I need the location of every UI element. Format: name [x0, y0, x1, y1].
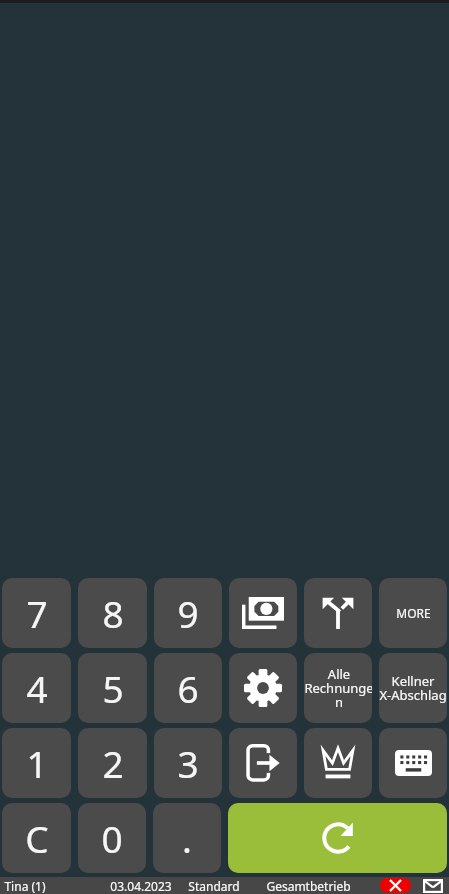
button[interactable]: Alle Rechnunge n — [304, 653, 372, 723]
staticText: 5 — [102, 663, 124, 713]
button[interactable] — [380, 878, 411, 893]
button[interactable]: 4 — [2, 653, 71, 723]
staticText: Standard — [188, 878, 240, 894]
button[interactable] — [304, 578, 372, 648]
staticText: Tina (1) — [4, 878, 46, 894]
button[interactable] — [228, 803, 447, 873]
button[interactable]: 2 — [78, 728, 147, 798]
staticText: C — [25, 813, 49, 863]
staticText: 03.04.2023 — [110, 878, 172, 894]
button[interactable]: . — [153, 803, 221, 873]
button[interactable] — [379, 728, 447, 798]
button[interactable]: C — [2, 803, 71, 873]
staticText: 6 — [177, 663, 199, 713]
staticText: Kellner X-Abschlag — [379, 672, 447, 704]
staticText: 3 — [177, 738, 199, 788]
button[interactable] — [229, 578, 297, 648]
button[interactable]: 7 — [2, 578, 71, 648]
staticText: 4 — [26, 663, 48, 713]
staticText: 9 — [177, 588, 199, 638]
button[interactable]: 1 — [2, 728, 71, 798]
staticText: . — [182, 813, 192, 863]
staticText: MORE — [396, 605, 431, 621]
button[interactable]: 5 — [78, 653, 147, 723]
staticText: 1 — [26, 738, 48, 788]
staticText: 2 — [102, 738, 124, 788]
button[interactable]: 3 — [154, 728, 222, 798]
button[interactable] — [423, 879, 443, 893]
staticText: Alle Rechnunge n — [304, 665, 372, 711]
staticText: 0 — [101, 813, 123, 863]
button[interactable]: 9 — [154, 578, 222, 648]
button[interactable] — [304, 728, 372, 798]
button[interactable] — [229, 653, 297, 723]
staticText: 7 — [26, 588, 48, 638]
button[interactable]: 8 — [78, 578, 147, 648]
staticText: Gesamtbetrieb — [266, 878, 351, 894]
button[interactable]: Kellner X-Abschlag — [379, 653, 447, 723]
button[interactable]: 6 — [154, 653, 222, 723]
button[interactable]: 0 — [78, 803, 146, 873]
button[interactable] — [229, 728, 297, 798]
staticText: 8 — [102, 588, 124, 638]
button[interactable]: MORE — [379, 578, 447, 648]
